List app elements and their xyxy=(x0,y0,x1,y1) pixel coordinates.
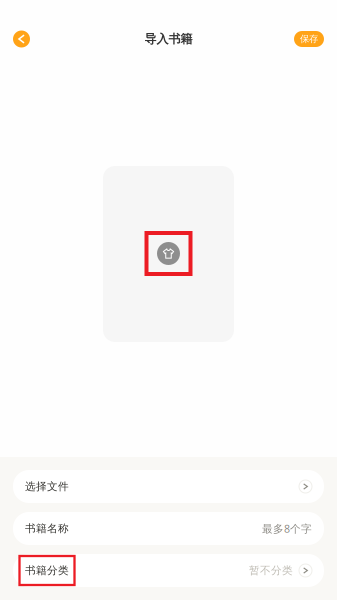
button[interactable]: 选择封面 xyxy=(103,166,234,342)
staticText: 书籍名称 xyxy=(25,522,69,535)
button[interactable]: 书籍名称 xyxy=(13,512,324,545)
staticText: 选择文件 xyxy=(25,480,69,493)
staticText: 最多8个字 xyxy=(262,521,312,536)
button[interactable]: 书籍分类 xyxy=(13,554,324,587)
button[interactable]: 保存 xyxy=(294,31,324,47)
button[interactable]: 选择文件 xyxy=(13,470,324,503)
button[interactable]: 返回 xyxy=(13,30,30,47)
staticText: 暂不分类 xyxy=(249,564,293,577)
staticText: 书籍分类 xyxy=(25,564,69,577)
staticText: 导入书籍 xyxy=(144,32,192,46)
staticText: 保存 xyxy=(300,33,318,45)
